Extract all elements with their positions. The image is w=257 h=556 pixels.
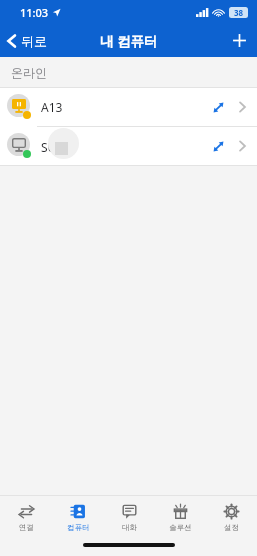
button[interactable]: 연결: [0, 496, 52, 538]
button[interactable]: 설정: [206, 496, 257, 538]
staticText: SU: [41, 139, 57, 155]
staticText: 컴퓨터: [67, 523, 90, 532]
staticText: A13: [41, 99, 63, 115]
button[interactable]: SU: [0, 127, 257, 165]
button[interactable]: Details: [234, 134, 251, 158]
staticText: 38: [234, 7, 244, 18]
button[interactable]: Connect: [208, 135, 229, 158]
staticText: 대화: [122, 523, 137, 532]
staticText: 뒤로: [21, 33, 47, 49]
staticText: 설정: [224, 523, 239, 532]
button[interactable]: Connect: [208, 96, 229, 119]
button[interactable]: A13: [0, 88, 257, 126]
staticText: 연결: [19, 523, 34, 532]
button[interactable]: Details: [234, 95, 251, 119]
button[interactable]: 대화: [104, 496, 155, 538]
button[interactable]: 컴퓨터: [52, 496, 104, 538]
staticText: 11:03: [20, 5, 49, 20]
staticText: 내 컴퓨터: [100, 32, 158, 50]
staticText: 온라인: [11, 65, 47, 80]
button[interactable]: 솔루션: [155, 496, 206, 538]
button[interactable]: Add computer: [222, 27, 257, 54]
button[interactable]: 뒤로: [0, 29, 55, 53]
staticText: 솔루션: [169, 523, 192, 532]
